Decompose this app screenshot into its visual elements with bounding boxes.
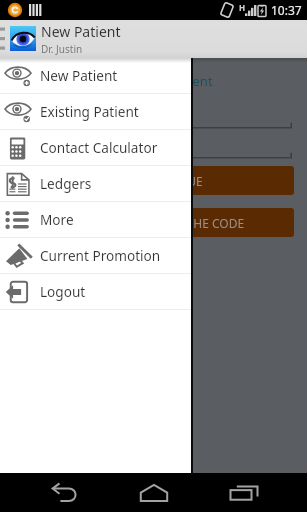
staticText: New Patient xyxy=(41,22,121,41)
staticText: Current Promotion xyxy=(40,246,161,265)
staticText: 10:37 xyxy=(271,2,302,18)
staticText: Logout xyxy=(40,282,86,301)
button[interactable]: I ALREADY HAVE THE CODE xyxy=(15,208,294,237)
staticText: New Patient xyxy=(40,66,118,85)
button[interactable]: Recent apps xyxy=(214,473,274,512)
button[interactable]: Back xyxy=(34,473,94,512)
button[interactable]: Ledgers xyxy=(0,166,191,201)
staticText: Ledgers xyxy=(40,174,92,193)
button[interactable]: New Patient xyxy=(0,58,191,93)
staticText: Existing Patient xyxy=(40,102,139,121)
button[interactable]: SAVE AND CONTINUE xyxy=(15,166,294,195)
button[interactable]: Open navigation drawer xyxy=(0,20,9,58)
staticText: Register New Patient xyxy=(85,72,213,90)
button[interactable]: Home xyxy=(124,473,184,512)
staticText: SAVE AND CONTINUE xyxy=(82,173,203,189)
staticText: Contact Calculator xyxy=(40,138,158,157)
staticText: H xyxy=(239,2,246,13)
staticText: I ALREADY HAVE THE CODE xyxy=(92,215,245,231)
button[interactable]: Current Promotion xyxy=(0,238,191,273)
button[interactable]: Existing Patient xyxy=(0,94,191,129)
staticText: More xyxy=(40,210,74,229)
button[interactable]: Contact Calculator xyxy=(0,130,191,165)
button[interactable]: More xyxy=(0,202,191,237)
staticText: Dr. Justin xyxy=(41,42,83,56)
button[interactable]: Logout xyxy=(0,274,191,309)
